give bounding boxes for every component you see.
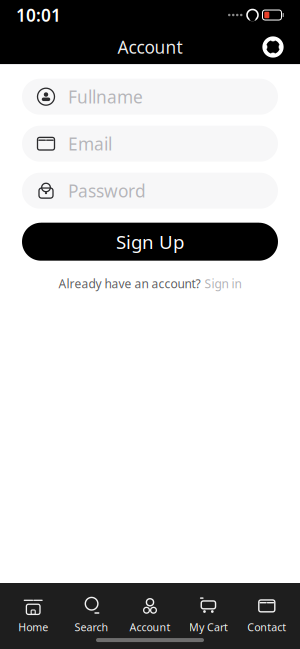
button[interactable]: Password — [22, 173, 278, 209]
staticText: My Cart — [189, 620, 228, 634]
staticText: Sign in — [204, 276, 241, 292]
button[interactable]: Fullname — [22, 79, 278, 115]
button[interactable]: My Cart — [179, 593, 238, 638]
button[interactable]: Home — [4, 593, 62, 638]
staticText: Password — [68, 179, 146, 202]
button[interactable]: Sign Up — [22, 223, 278, 261]
button[interactable]: Contact — [238, 593, 296, 638]
button[interactable]: Email — [22, 126, 278, 162]
button[interactable]: Settings — [258, 32, 288, 62]
button[interactable]: Already have an account? — [22, 273, 278, 295]
staticText: Account — [117, 35, 182, 58]
staticText: 10:01 — [16, 3, 61, 26]
button[interactable]: Account — [121, 593, 179, 638]
staticText: Email — [68, 132, 112, 155]
staticText: Account — [129, 620, 170, 634]
button[interactable]: Search — [62, 593, 121, 638]
staticText: Already have an account? — [58, 276, 200, 292]
staticText: Search — [75, 620, 109, 634]
staticText: Sign Up — [116, 229, 184, 254]
staticText: Contact — [247, 620, 286, 634]
staticText: Fullname — [68, 85, 143, 108]
staticText: Home — [18, 620, 48, 634]
